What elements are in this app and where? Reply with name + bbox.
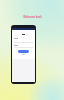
button[interactable] <box>18 50 29 53</box>
staticText: Welcome back <box>23 15 42 19</box>
